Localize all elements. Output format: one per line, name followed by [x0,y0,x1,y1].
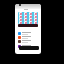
button[interactable] [19,46,39,50]
button[interactable] [18,39,39,43]
button[interactable] [18,44,39,48]
button[interactable] [18,35,39,39]
button[interactable] [18,31,39,35]
